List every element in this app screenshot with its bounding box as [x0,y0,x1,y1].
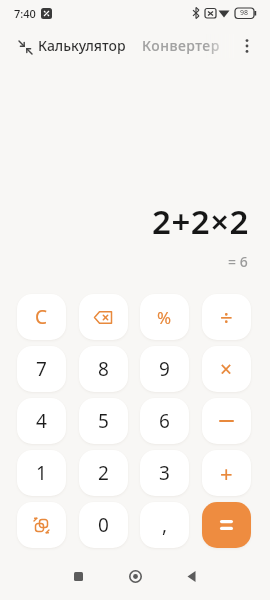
staticText: C [35,304,48,330]
button[interactable]: 6 [140,398,189,444]
staticText: 98 [240,8,249,18]
button[interactable] [10,36,40,58]
button[interactable]: 4 [17,398,66,444]
staticText: 0 [98,512,109,538]
button[interactable]: % [140,294,189,340]
button[interactable]: 3 [140,450,189,496]
staticText: % [157,306,172,329]
button[interactable] [202,398,251,444]
button[interactable]: + [202,450,251,496]
staticText: Калькулятор [38,36,126,55]
staticText: 1 [36,460,47,486]
button[interactable]: 1 [17,450,66,496]
button[interactable] [62,565,94,587]
staticText: + [220,458,233,488]
button[interactable] [17,502,66,548]
staticText: 2+2×2 [152,199,249,244]
staticText: 8 [98,356,109,382]
button[interactable]: ÷ [202,294,251,340]
staticText: 9 [159,356,170,382]
staticText: Конвертер [142,36,220,55]
button[interactable]: 5 [79,398,128,444]
staticText: 3 [159,460,170,486]
staticText: = 6 [228,252,248,271]
staticText: 7 [36,356,47,382]
button[interactable] [202,502,251,548]
staticText: , [162,512,168,538]
button[interactable]: Конвертер [142,36,220,55]
button[interactable]: , [140,502,189,548]
button[interactable]: C [17,294,66,340]
button[interactable]: Калькулятор [38,36,126,55]
button[interactable] [79,294,128,340]
button[interactable]: 7 [17,346,66,392]
button[interactable] [175,565,207,587]
staticText: 2 [98,460,109,486]
staticText: 7:40 [14,6,36,21]
staticText: 5 [98,408,109,434]
staticText: × [220,355,233,384]
button[interactable]: 9 [140,346,189,392]
staticText: 4 [36,408,47,434]
button[interactable] [119,565,151,587]
staticText: 6 [159,408,170,434]
button[interactable]: 8 [79,346,128,392]
button[interactable] [236,34,258,58]
button[interactable]: 2 [79,450,128,496]
button[interactable]: × [202,346,251,392]
staticText: ÷ [220,302,233,332]
button[interactable]: 0 [79,502,128,548]
